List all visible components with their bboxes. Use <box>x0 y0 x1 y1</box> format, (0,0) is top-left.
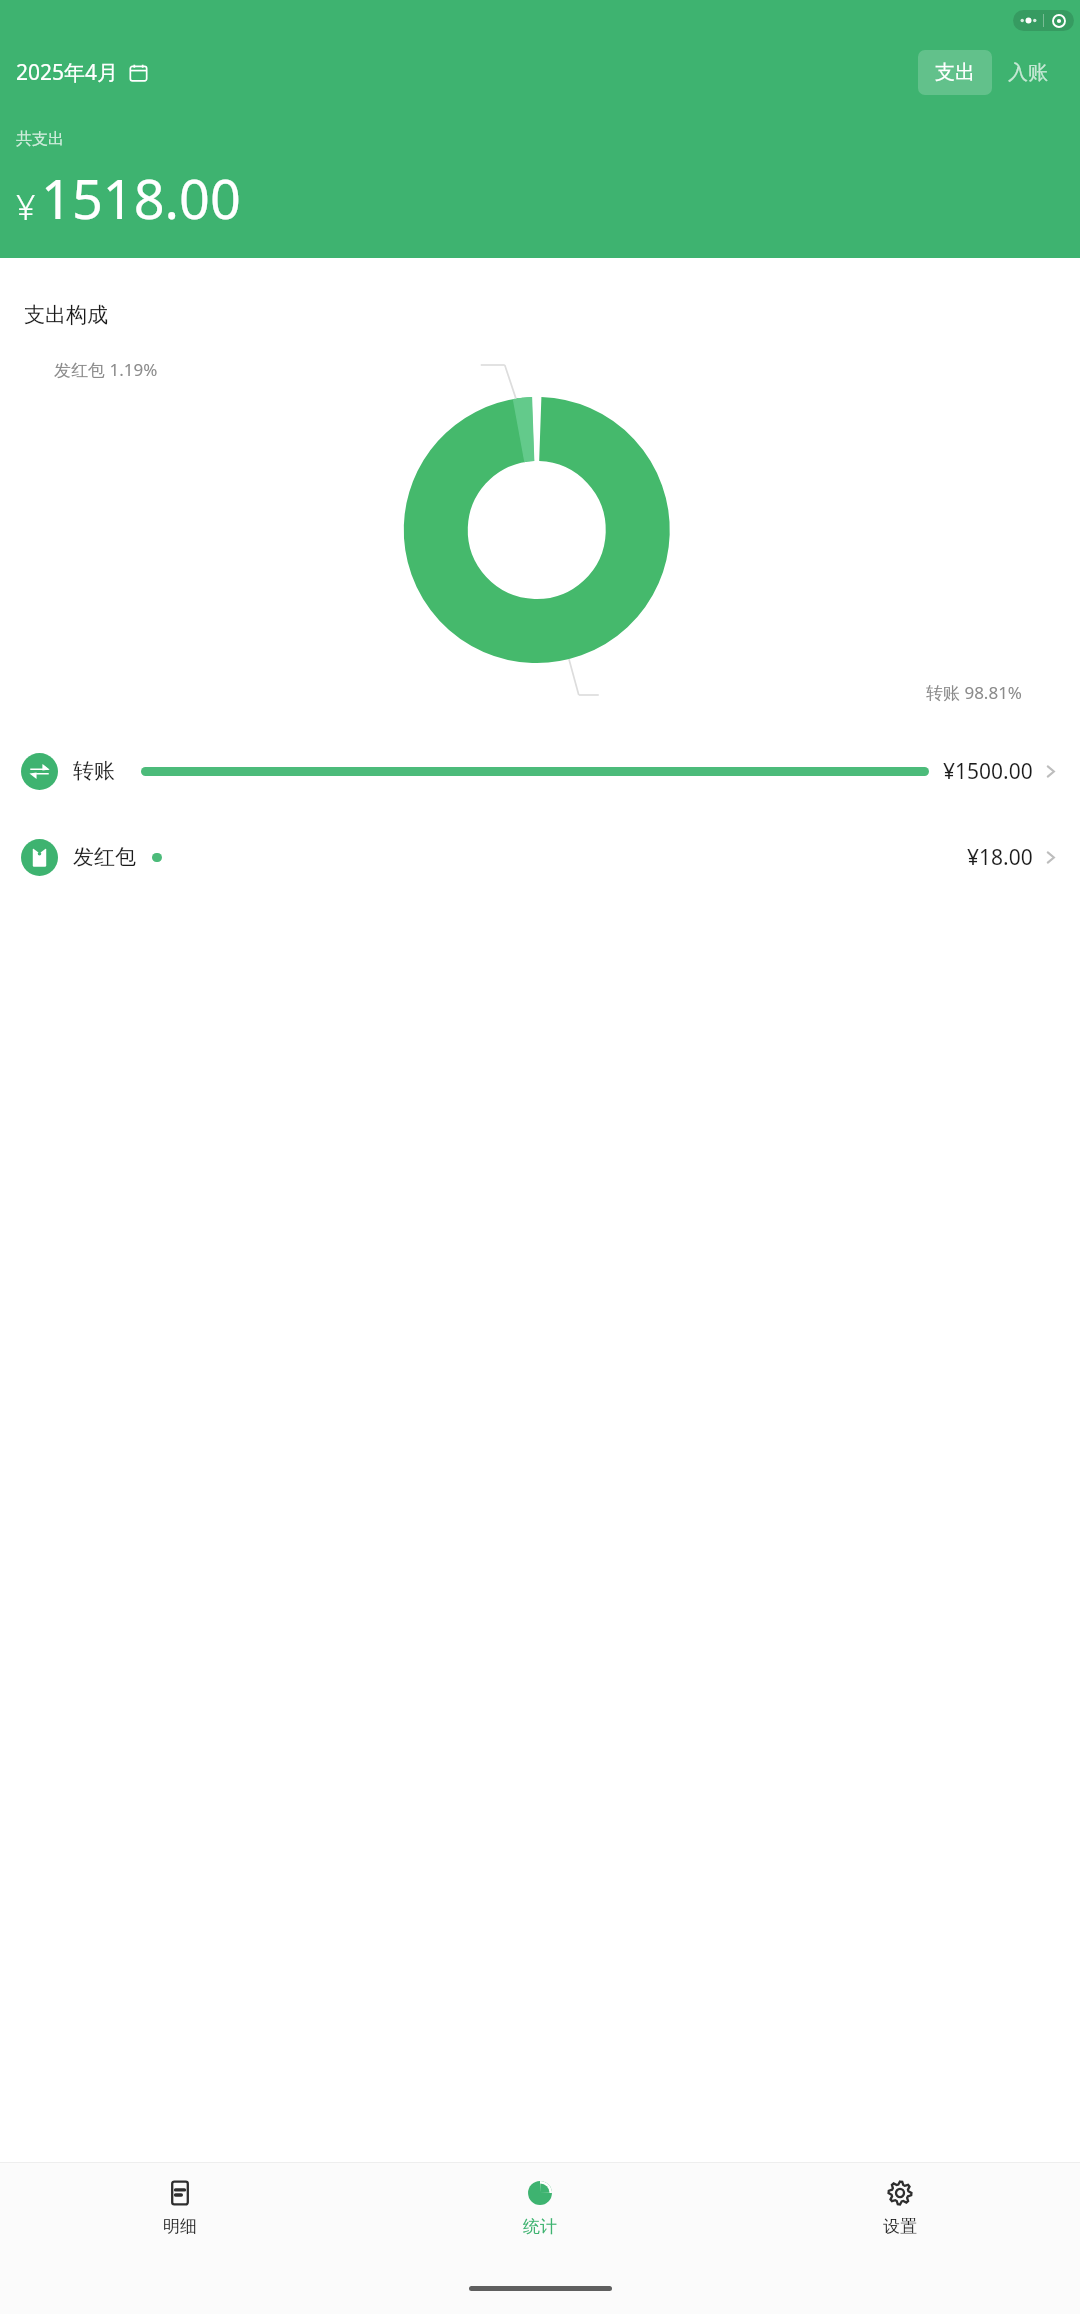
staticText: ¥ <box>16 184 36 230</box>
staticText: ¥18.00 <box>967 843 1033 872</box>
staticText: ¥1500.00 <box>943 757 1033 786</box>
staticText: 2025年4月 <box>16 58 119 87</box>
staticText: 设置 <box>883 2216 917 2237</box>
button[interactable]: 发红包 <box>0 814 1080 900</box>
staticText: 发红包 <box>73 844 136 870</box>
staticText: 转账 <box>73 758 115 784</box>
button[interactable]: 转账 <box>0 728 1080 814</box>
staticText: 发红包 1.19% <box>54 358 158 381</box>
button[interactable]: More options <box>1013 10 1043 31</box>
button[interactable]: 设置 <box>720 2163 1080 2286</box>
staticText: 统计 <box>523 2216 557 2237</box>
button[interactable]: 支出 <box>918 50 992 95</box>
staticText: 入账 <box>1008 60 1048 85</box>
button[interactable]: Close mini program <box>1044 10 1074 31</box>
button[interactable]: 明细 <box>0 2163 360 2286</box>
button[interactable]: 统计 <box>360 2163 720 2286</box>
staticText: 共支出 <box>16 129 64 149</box>
staticText: 明细 <box>163 2216 197 2237</box>
button[interactable]: 入账 <box>992 50 1064 95</box>
staticText: 支出构成 <box>24 302 108 328</box>
button[interactable]: 2025年4月 <box>16 58 148 87</box>
staticText: 支出 <box>935 60 975 85</box>
staticText: 1518.00 <box>41 161 241 235</box>
staticText: 转账 98.81% <box>926 681 1022 704</box>
